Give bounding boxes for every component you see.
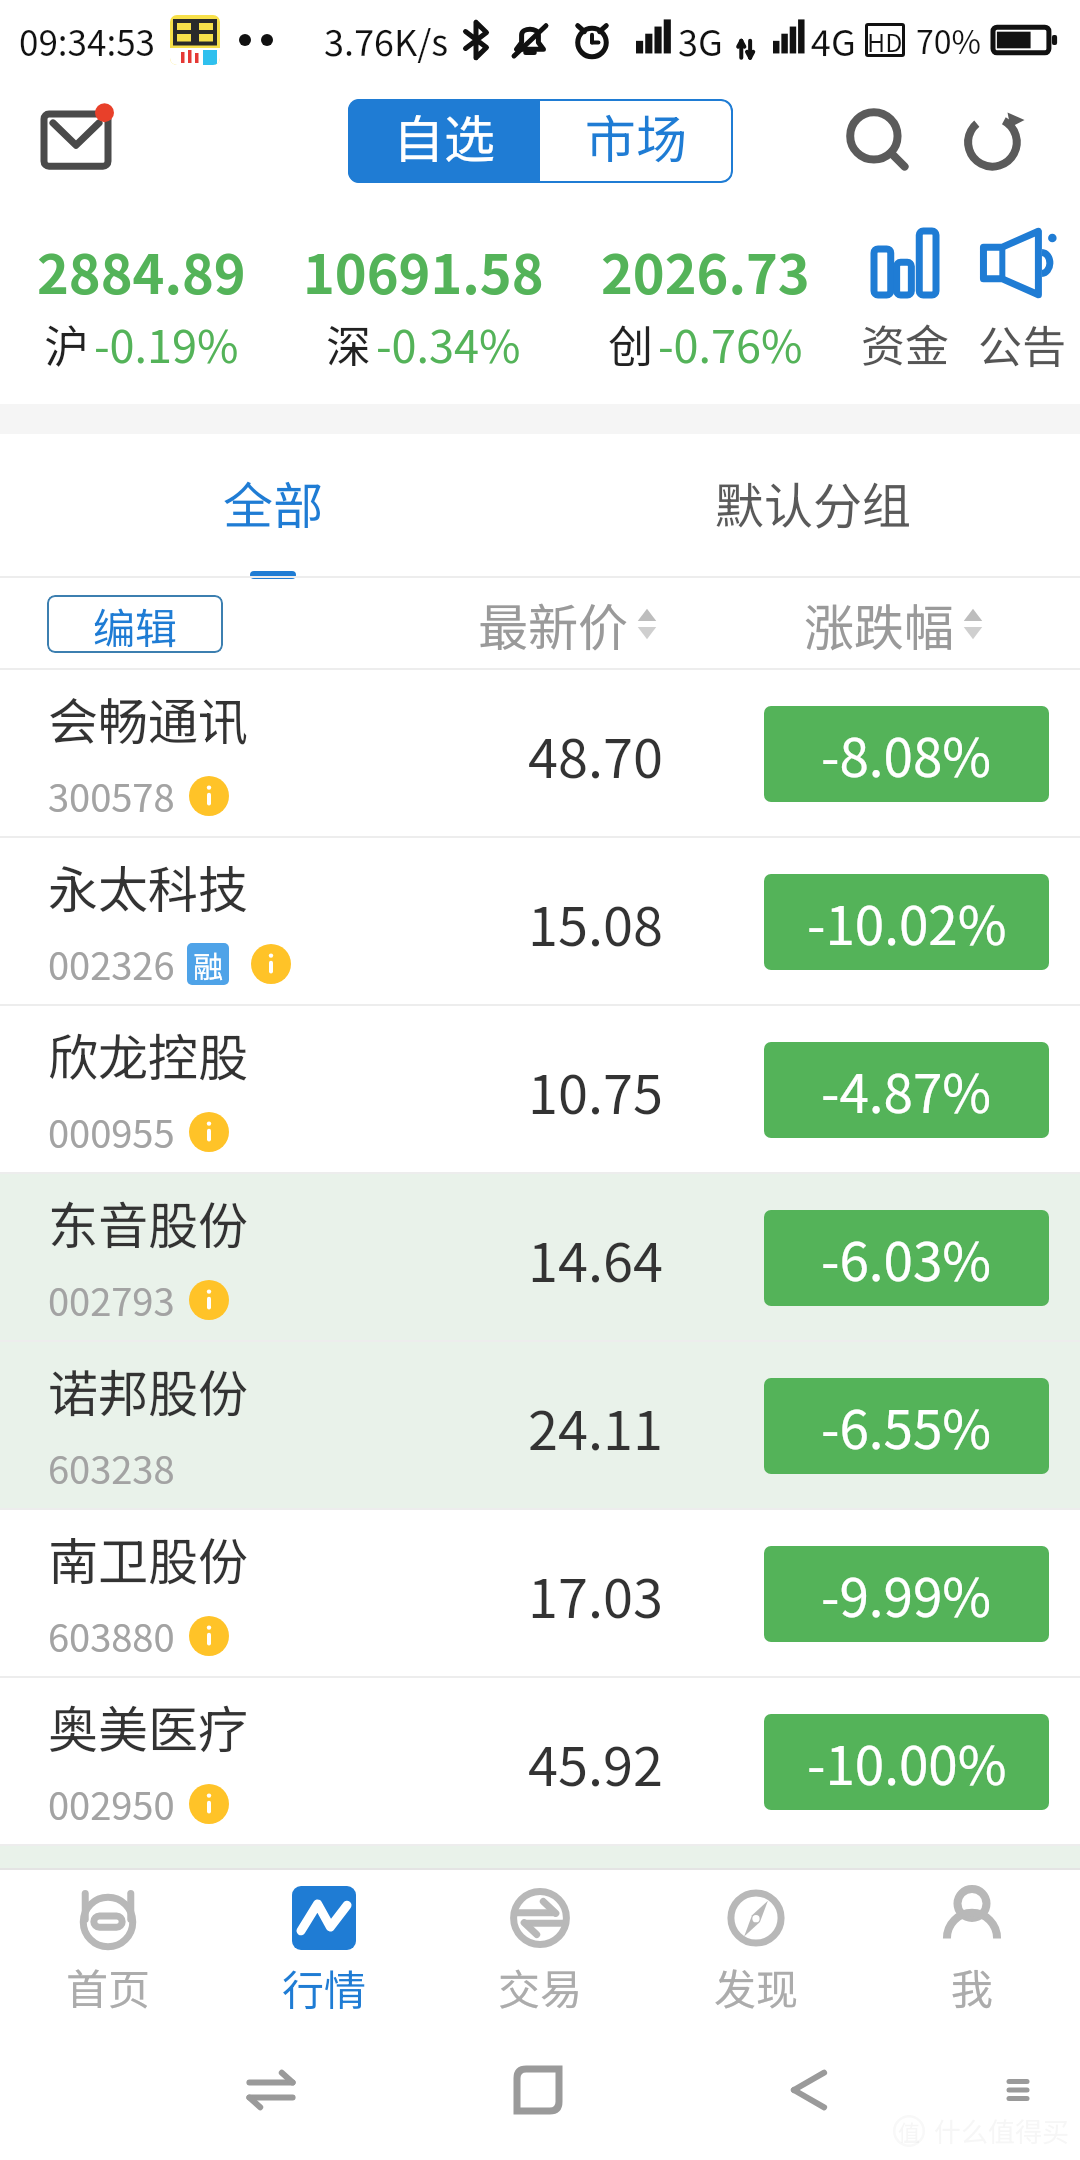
- staticText: 603238: [48, 1440, 175, 1495]
- staticText: 002950: [48, 1776, 175, 1831]
- staticText: 45.92: [528, 1723, 663, 1801]
- staticText: 2884.89: [37, 231, 246, 309]
- button[interactable]: 自选: [348, 99, 540, 183]
- button[interactable]: 行情: [216, 1868, 432, 2020]
- staticText: 沪: [44, 311, 90, 376]
- staticText: 300578: [48, 768, 175, 823]
- staticText: 3.76K/s: [324, 14, 449, 66]
- button[interactable]: Switch: [231, 2050, 311, 2130]
- button[interactable]: 2884.89: [0, 202, 282, 404]
- staticText: -0.19%: [94, 311, 239, 376]
- button[interactable]: 永太科技: [0, 838, 1080, 1006]
- staticText: 首页: [66, 1956, 151, 2017]
- button[interactable]: 东音股份: [0, 1174, 1080, 1342]
- button[interactable]: 我: [864, 1868, 1080, 2020]
- button[interactable]: Refresh: [950, 96, 1040, 186]
- button[interactable]: 2026.73: [564, 202, 846, 404]
- button[interactable]: 交易: [432, 1868, 648, 2020]
- button[interactable]: 10691.58: [282, 202, 564, 404]
- button[interactable]: 奥美医疗: [0, 1678, 1080, 1846]
- button[interactable]: Recent apps: [498, 2050, 578, 2130]
- staticText: 全部: [223, 466, 323, 538]
- button[interactable]: 涨跌幅: [804, 588, 984, 660]
- button[interactable]: 南卫股份: [0, 1510, 1080, 1678]
- staticText: 24.11: [528, 1387, 663, 1465]
- staticText: -6.55%: [821, 1388, 992, 1465]
- staticText: 行情: [282, 1957, 367, 2018]
- button[interactable]: 欣龙控股: [0, 1006, 1080, 1174]
- staticText: 14.64: [528, 1219, 663, 1297]
- staticText: 交易: [498, 1956, 583, 2017]
- staticText: 融: [193, 943, 223, 985]
- staticText: 70%: [916, 17, 981, 63]
- staticText: 发现: [714, 1956, 799, 2017]
- staticText: -8.08%: [821, 716, 992, 793]
- staticText: 永太科技: [48, 850, 248, 922]
- staticText: 000955: [48, 1104, 175, 1159]
- button[interactable]: 会畅通讯: [0, 670, 1080, 838]
- staticText: 东音股份: [48, 1186, 248, 1258]
- button[interactable]: 编辑: [47, 595, 223, 653]
- staticText: 南卫股份: [48, 1522, 248, 1594]
- staticText: -0.34%: [376, 311, 521, 376]
- staticText: 002793: [48, 1272, 175, 1327]
- staticText: 诺邦股份: [48, 1354, 248, 1426]
- staticText: 公告: [978, 312, 1066, 376]
- staticText: 创: [608, 311, 654, 376]
- staticText: 最新价: [478, 588, 628, 660]
- button[interactable]: 公告: [963, 202, 1080, 404]
- staticText: -0.76%: [658, 311, 803, 376]
- staticText: -4.87%: [821, 1052, 992, 1129]
- staticText: 603880: [48, 1608, 175, 1663]
- staticText: 奥美医疗: [48, 1690, 248, 1762]
- button[interactable]: Messages: [30, 96, 130, 186]
- staticText: HD: [867, 23, 903, 57]
- button[interactable]: 市场: [540, 99, 733, 183]
- staticText: 深: [326, 311, 372, 376]
- staticText: 市场: [585, 99, 688, 173]
- staticText: 15.08: [528, 883, 663, 961]
- staticText: 002326: [48, 936, 175, 991]
- staticText: 4G: [811, 14, 856, 66]
- staticText: 自选: [393, 99, 496, 173]
- staticText: -6.03%: [821, 1220, 992, 1297]
- staticText: 什么值得买: [934, 2111, 1069, 2150]
- button[interactable]: More: [978, 2050, 1058, 2130]
- staticText: 3G: [678, 14, 723, 66]
- staticText: 默认分组: [715, 467, 912, 538]
- staticText: 值: [898, 2115, 921, 2147]
- button[interactable]: Search: [834, 96, 924, 186]
- button[interactable]: 资金: [846, 202, 963, 404]
- button[interactable]: 发现: [648, 1868, 864, 2020]
- staticText: 编辑: [93, 595, 178, 653]
- button[interactable]: 全部: [0, 434, 540, 578]
- staticText: -9.99%: [821, 1556, 992, 1633]
- staticText: 09:34:53: [19, 15, 156, 66]
- staticText: 10.75: [528, 1051, 663, 1129]
- staticText: 涨跌幅: [804, 588, 954, 660]
- button[interactable]: 最新价: [478, 588, 658, 660]
- staticText: 17.03: [528, 1555, 663, 1633]
- staticText: 10691.58: [303, 231, 544, 309]
- staticText: 我: [951, 1956, 994, 2017]
- staticText: 2026.73: [601, 231, 810, 309]
- staticText: 48.70: [528, 715, 663, 793]
- staticText: -10.00%: [807, 1724, 1007, 1801]
- staticText: 欣龙控股: [48, 1018, 248, 1090]
- staticText: 资金: [861, 311, 949, 375]
- button[interactable]: Back: [769, 2050, 849, 2130]
- staticText: -10.02%: [807, 884, 1007, 961]
- button[interactable]: 默认分组: [540, 434, 1080, 578]
- staticText: 会畅通讯: [48, 682, 248, 754]
- button[interactable]: 诺邦股份: [0, 1342, 1080, 1510]
- button[interactable]: 首页: [0, 1868, 216, 2020]
